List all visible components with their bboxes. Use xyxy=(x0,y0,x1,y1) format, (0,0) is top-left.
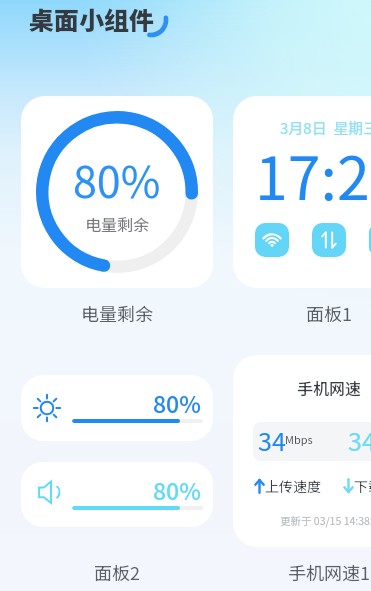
button[interactable]: Volume xyxy=(21,462,213,527)
staticText: 电量剩余 xyxy=(85,212,150,235)
staticText: 下载 xyxy=(354,476,371,496)
staticText: 更新于 03/15 14:38:2 xyxy=(280,513,371,528)
button[interactable]: 3月8日 星期三 xyxy=(233,96,371,288)
button[interactable]: Mobile data xyxy=(312,223,346,257)
button[interactable]: WiFi xyxy=(255,223,289,257)
staticText: 面板1 xyxy=(306,300,352,326)
staticText: 17:28 xyxy=(255,132,371,217)
staticText: 34 xyxy=(258,422,286,458)
staticText: 80% xyxy=(73,148,161,210)
staticText: 80% xyxy=(153,386,201,419)
button[interactable]: 手机网速 xyxy=(233,355,371,547)
button[interactable]: Brightness xyxy=(21,355,213,547)
button[interactable]: Brightness xyxy=(21,375,213,441)
staticText: 电量剩余 xyxy=(81,300,153,326)
staticText: 上传速度 xyxy=(265,476,321,496)
button[interactable]: 80% xyxy=(21,96,213,288)
staticText: Mbps xyxy=(285,431,313,447)
staticText: 面板2 xyxy=(94,559,140,585)
staticText: 手机网速1 xyxy=(288,559,370,585)
staticText: 3月8日 星期三 xyxy=(280,117,371,139)
staticText: 桌面小组件 xyxy=(29,1,155,37)
staticText: 34 xyxy=(348,422,371,458)
button[interactable]: Bluetooth xyxy=(369,223,371,257)
staticText: 手机网速 xyxy=(297,376,362,399)
staticText: 80% xyxy=(153,473,201,506)
